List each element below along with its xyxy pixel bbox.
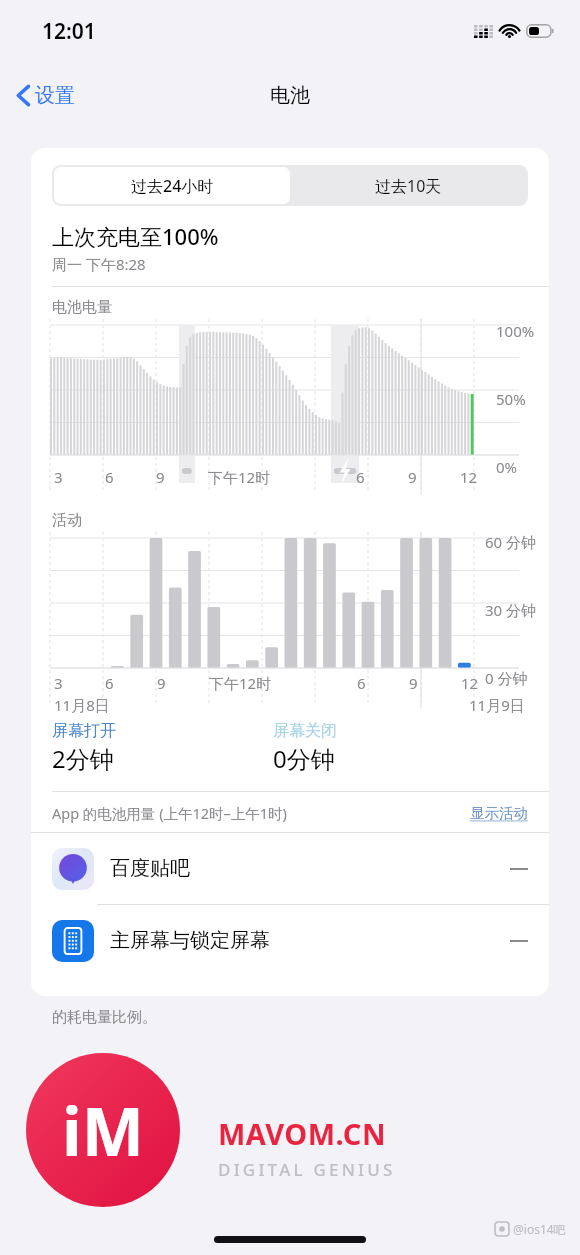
staticText: 0分钟 bbox=[273, 742, 335, 775]
staticText: @ios14吧 bbox=[513, 1221, 566, 1237]
staticText: iM bbox=[62, 1085, 144, 1175]
staticText: 屏幕关闭 bbox=[273, 721, 337, 741]
staticText: 百度贴吧 bbox=[110, 856, 190, 881]
staticText: 6 bbox=[357, 673, 366, 693]
staticText: 2分钟 bbox=[52, 742, 114, 775]
staticText: 过去10天 bbox=[375, 175, 442, 197]
staticText: 周一 下午8:28 bbox=[52, 254, 146, 274]
button[interactable]: 主屏幕与锁定屏幕 bbox=[31, 905, 549, 976]
staticText: 100% bbox=[496, 321, 535, 341]
staticText: 9 bbox=[408, 467, 417, 487]
staticText: MAVOM.CN bbox=[218, 1114, 386, 1153]
staticText: 11月8日 bbox=[54, 695, 110, 715]
staticText: 显示活动 bbox=[470, 804, 528, 822]
button[interactable]: 显示活动 bbox=[470, 804, 528, 822]
staticText: 6 bbox=[356, 467, 365, 487]
staticText: 12:01 bbox=[42, 17, 96, 46]
staticText: 30 分钟 bbox=[485, 600, 537, 620]
button[interactable]: 过去24小时 bbox=[54, 167, 290, 204]
staticText: 60 分钟 bbox=[485, 532, 537, 552]
staticText: 过去24小时 bbox=[131, 175, 214, 197]
staticText: 设置 bbox=[35, 83, 75, 108]
staticText: 上次充电至100% bbox=[52, 221, 219, 251]
staticText: 屏幕打开 bbox=[52, 721, 116, 741]
staticText: 0% bbox=[496, 457, 518, 477]
button[interactable]: 过去10天 bbox=[290, 167, 526, 204]
staticText: 下午12时 bbox=[208, 467, 271, 487]
staticText: 9 bbox=[409, 673, 418, 693]
staticText: App 的电池用量 (上午12时–上午1时) bbox=[52, 803, 287, 823]
staticText: 电池 bbox=[270, 83, 310, 108]
staticText: 9 bbox=[157, 673, 166, 693]
staticText: 9 bbox=[156, 467, 165, 487]
staticText: 50% bbox=[496, 389, 526, 409]
staticText: 0 分钟 bbox=[485, 668, 528, 688]
staticText: 的耗电量比例。 bbox=[52, 1008, 157, 1027]
staticText: 3 bbox=[54, 673, 63, 693]
staticText: 12 bbox=[460, 467, 478, 487]
staticText: 下午12时 bbox=[209, 673, 272, 693]
staticText: 活动 bbox=[52, 511, 82, 530]
staticText: 12 bbox=[461, 673, 479, 693]
staticText: 主屏幕与锁定屏幕 bbox=[110, 928, 270, 953]
staticText: 11月9日 bbox=[469, 695, 525, 715]
button[interactable]: 设置 bbox=[0, 73, 91, 118]
staticText: 电池电量 bbox=[52, 298, 112, 317]
staticText: DIGITAL GENIUS bbox=[218, 1158, 396, 1181]
staticText: 6 bbox=[105, 467, 114, 487]
staticText: 3 bbox=[54, 467, 63, 487]
staticText: 6 bbox=[105, 673, 114, 693]
button[interactable]: 百度贴吧 bbox=[31, 833, 549, 904]
